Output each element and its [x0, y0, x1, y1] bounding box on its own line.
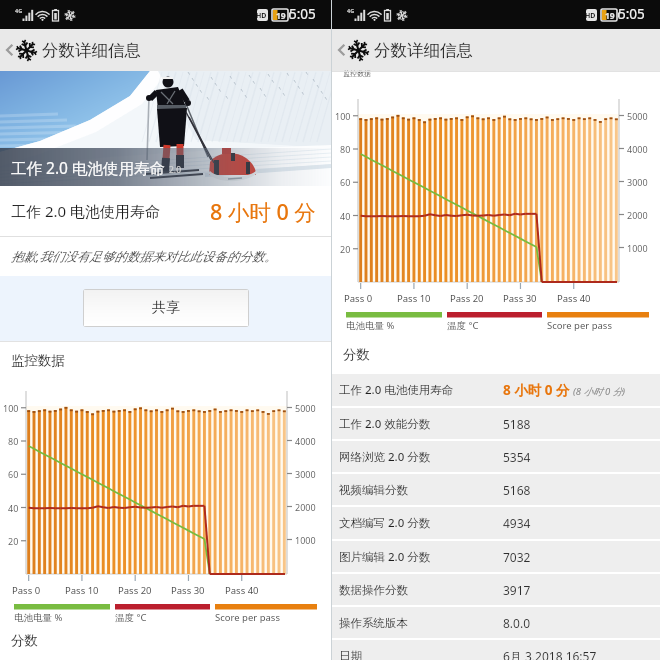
staticText: 20	[8, 535, 19, 547]
staticText: 抱歉,我们没有足够的数据来对比此设备的分数。	[11, 248, 277, 265]
staticText: 日期	[339, 649, 362, 660]
staticText: 2000	[627, 209, 648, 221]
staticText: 5354	[503, 449, 531, 465]
staticText: 100	[3, 402, 19, 414]
staticText: 3917	[503, 582, 531, 598]
button[interactable]: 文档编写 2.0 分数	[332, 507, 660, 539]
staticText: 5:05	[289, 5, 316, 23]
staticText: 60	[8, 468, 19, 480]
staticText: (8 小时 0 分)	[573, 385, 625, 398]
staticText: Pass 30	[503, 292, 537, 305]
button[interactable]: 日期	[332, 640, 660, 660]
staticText: 温度 °C	[115, 611, 147, 624]
staticText: 20	[340, 243, 351, 255]
button[interactable]: 数据操作分数	[332, 574, 660, 605]
staticText: Score per pass	[215, 611, 280, 624]
button[interactable]: 共享	[84, 290, 248, 326]
staticText: 视频编辑分数	[339, 483, 408, 497]
staticText: 4934	[503, 515, 531, 531]
staticText: 2.0	[169, 164, 182, 176]
button[interactable]: 工作 2.0 电池使用寿命	[332, 374, 660, 406]
staticText: 6月 3,2018 16:57	[503, 648, 597, 660]
staticText: 4000	[295, 435, 316, 447]
staticText: 操作系统版本	[339, 616, 408, 630]
staticText: 3000	[627, 176, 648, 188]
staticText: 4000	[627, 143, 648, 155]
staticText: HD	[585, 11, 596, 21]
staticText: 监控数据	[11, 352, 65, 369]
staticText: HD	[256, 11, 267, 21]
staticText: Pass 0	[12, 584, 41, 597]
staticText: 分数详细信息	[42, 40, 141, 61]
staticText: 80	[340, 143, 351, 155]
staticText: 温度 °C	[447, 319, 479, 332]
staticText: 共享	[152, 299, 180, 317]
staticText: 4G	[15, 7, 23, 14]
staticText: Pass 10	[65, 584, 99, 597]
staticText: 电池电量 %	[346, 319, 395, 332]
button[interactable]: Back	[0, 29, 331, 71]
staticText: 工作 2.0 电池使用寿命	[11, 201, 160, 221]
staticText: 8 小时 0 分	[503, 381, 570, 399]
staticText: Pass 20	[118, 584, 152, 597]
staticText: 60	[340, 176, 351, 188]
staticText: Pass 40	[557, 292, 591, 305]
button[interactable]: 视频编辑分数	[332, 474, 660, 505]
staticText: 5188	[503, 416, 531, 432]
staticText: Pass 0	[344, 292, 373, 305]
staticText: 19	[276, 10, 286, 22]
staticText: 19	[605, 10, 615, 22]
staticText: 分数	[343, 346, 370, 363]
button[interactable]: 工作 2.0 效能分数	[332, 408, 660, 439]
staticText: 工作 2.0 电池使用寿命	[339, 382, 454, 398]
staticText: 8 小时 0 分	[210, 197, 316, 226]
staticText: 5:05	[618, 5, 645, 23]
button[interactable]: 图片编辑 2.0 分数	[332, 541, 660, 572]
staticText: 5000	[627, 110, 648, 122]
button[interactable]: Back	[332, 29, 660, 71]
staticText: 图片编辑 2.0 分数	[339, 549, 431, 565]
staticText: Score per pass	[547, 319, 612, 332]
staticText: Pass 40	[225, 584, 259, 597]
staticText: 文档编写 2.0 分数	[339, 515, 431, 531]
staticText: Pass 30	[171, 584, 205, 597]
staticText: 工作 2.0 效能分数	[339, 416, 431, 432]
staticText: 7032	[503, 549, 531, 565]
staticText: 100	[335, 110, 351, 122]
staticText: 5168	[503, 482, 531, 498]
button[interactable]: 网络浏览 2.0 分数	[332, 441, 660, 472]
staticText: 分数详细信息	[374, 40, 473, 61]
staticText: 1000	[627, 242, 648, 254]
staticText: 数据操作分数	[339, 583, 408, 597]
staticText: 4G	[347, 7, 355, 14]
staticText: 1000	[295, 534, 316, 546]
button[interactable]: 操作系统版本	[332, 607, 660, 638]
staticText: 电池电量 %	[14, 611, 63, 624]
staticText: 8.0.0	[503, 615, 531, 631]
staticText: 3000	[295, 468, 316, 480]
staticText: 40	[340, 210, 351, 222]
staticText: 分数	[11, 632, 38, 649]
staticText: Pass 20	[450, 292, 484, 305]
staticText: 80	[8, 435, 19, 447]
staticText: Pass 10	[397, 292, 431, 305]
staticText: 监控数据	[343, 69, 371, 78]
staticText: 网络浏览 2.0 分数	[339, 449, 431, 465]
staticText: 2000	[295, 501, 316, 513]
staticText: 工作 2.0 电池使用寿命	[11, 157, 165, 178]
staticText: 5000	[295, 402, 316, 414]
staticText: 40	[8, 502, 19, 514]
